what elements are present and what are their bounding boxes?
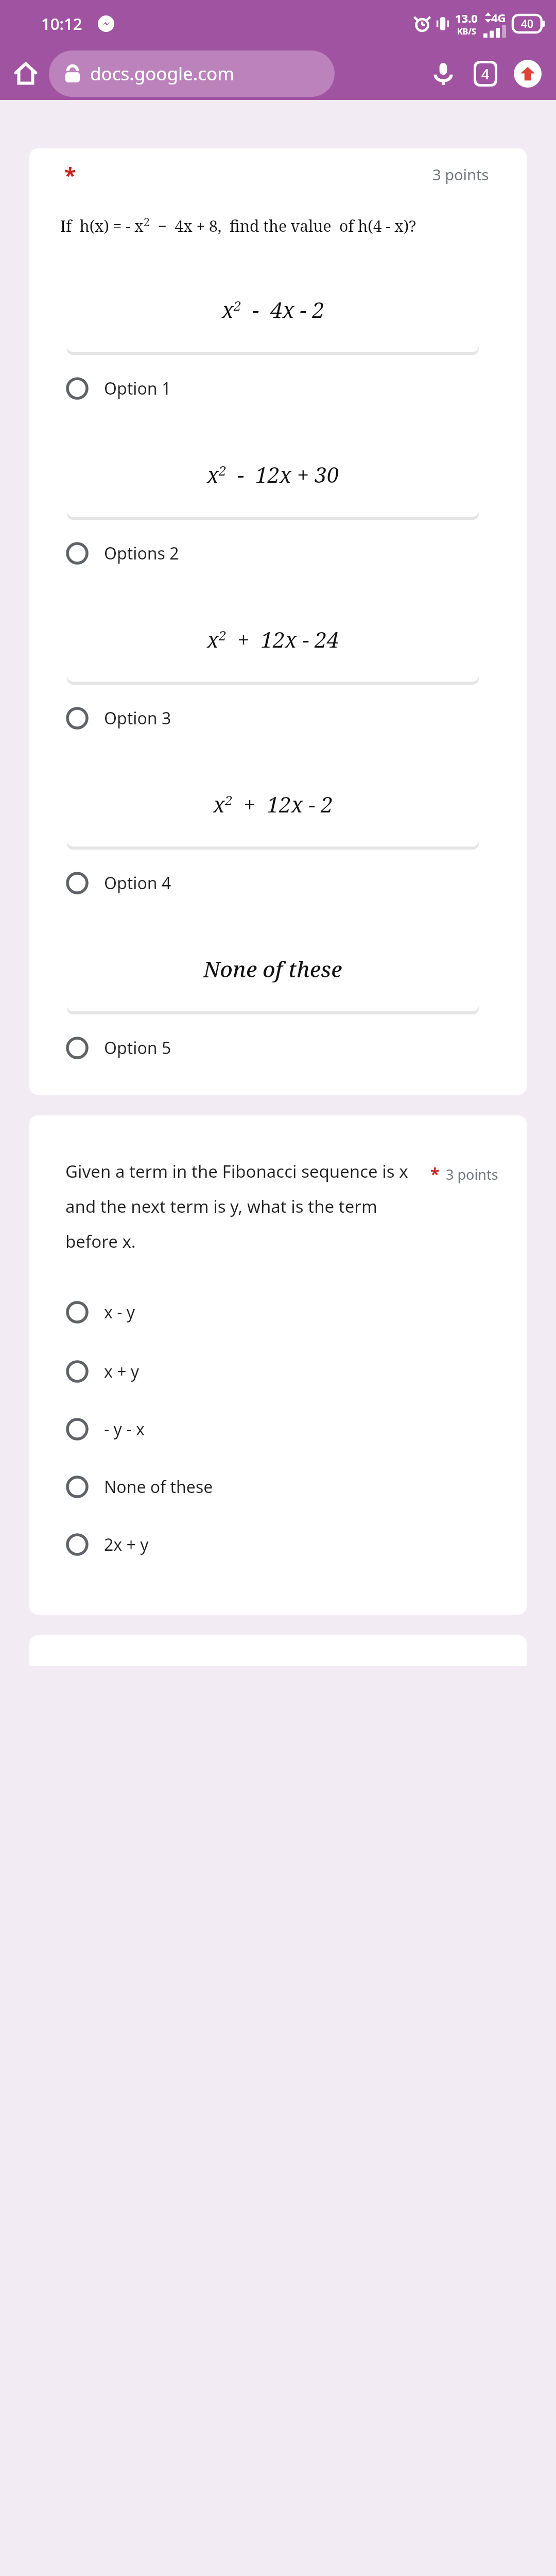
button[interactable]: docs.google.com — [49, 50, 335, 97]
staticText: x2 + 12x − 24 — [207, 624, 339, 654]
button[interactable]: x + y — [29, 1343, 527, 1400]
button[interactable]: Options 2 — [29, 536, 527, 570]
staticText: Option 3 — [104, 707, 171, 730]
staticText: If h(x) = - x2 − 4x + 8, find the value … — [60, 214, 416, 236]
staticText: * — [64, 160, 76, 189]
button[interactable]: Home — [8, 56, 43, 91]
button[interactable]: Option 4 — [29, 866, 527, 900]
staticText: 4G — [491, 10, 506, 25]
staticText: 3 points — [446, 1165, 498, 1184]
button[interactable]: Option 1 — [29, 371, 527, 405]
staticText: Option 1 — [104, 377, 171, 400]
staticText: x2 − 12x + 30 — [207, 460, 339, 489]
staticText: Option 4 — [104, 872, 171, 894]
staticText: x + y — [104, 1360, 140, 1383]
staticText: docs.google.com — [90, 61, 234, 86]
button[interactable]: Voice search — [422, 53, 464, 95]
staticText: 2x + y — [104, 1533, 149, 1556]
staticText: x - y — [104, 1301, 135, 1324]
button[interactable]: Update — [507, 53, 549, 95]
staticText: KB/S — [457, 26, 476, 37]
button[interactable]: x - y — [29, 1282, 527, 1343]
staticText: 4 — [481, 64, 490, 83]
staticText: x2 + 12x − 2 — [213, 789, 333, 819]
staticText: None of these — [104, 1476, 213, 1498]
staticText: 3 points — [432, 164, 489, 184]
staticText: Option 5 — [104, 1037, 171, 1059]
button[interactable]: Option 3 — [29, 701, 527, 735]
staticText: x2 − 4x − 2 — [222, 295, 324, 324]
staticText: - y - x — [104, 1418, 145, 1440]
staticText: 13.0 — [455, 10, 478, 26]
staticText: * — [430, 1163, 440, 1185]
staticText: 40 — [521, 16, 534, 31]
button[interactable]: Tabs — [464, 53, 507, 95]
staticText: None of these — [203, 954, 342, 984]
button[interactable]: 2x + y — [29, 1516, 527, 1573]
staticText: Options 2 — [104, 542, 179, 565]
button[interactable]: Option 5 — [29, 1031, 527, 1065]
staticText: Given a term in the Fibonacci sequence i… — [65, 1160, 423, 1253]
staticText: 10:12 — [41, 13, 82, 35]
button[interactable]: - y - x — [29, 1400, 527, 1458]
button[interactable]: None of these — [29, 1458, 527, 1516]
